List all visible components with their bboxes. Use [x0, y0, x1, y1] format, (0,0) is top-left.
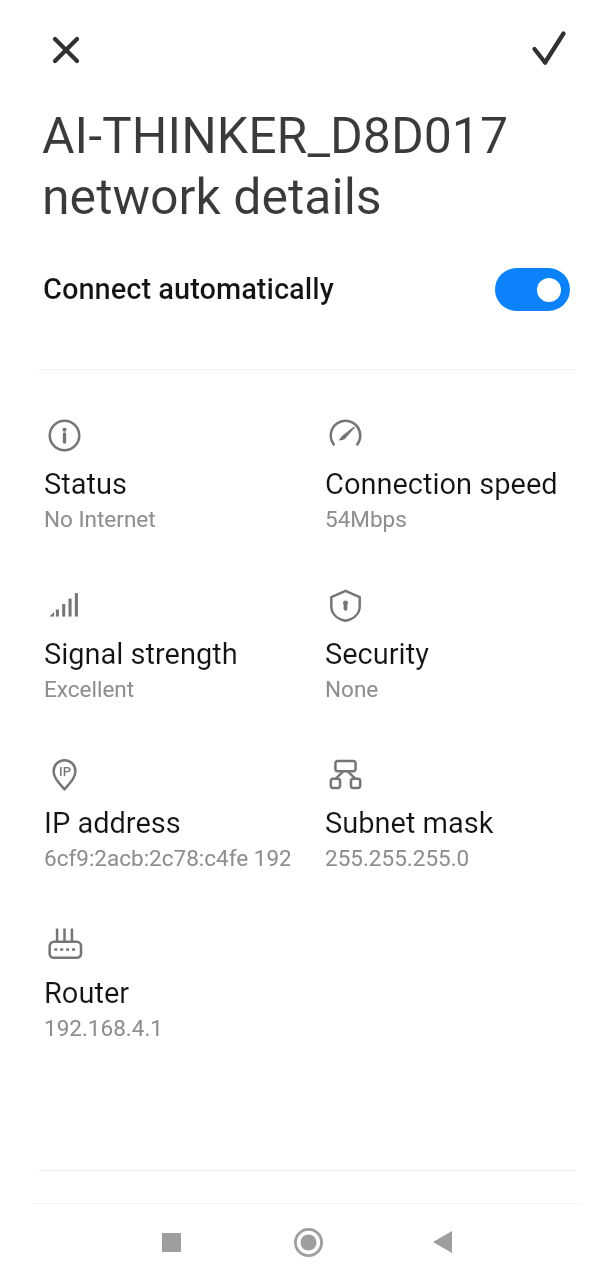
staticText: 54Mbps: [325, 506, 407, 532]
staticText: AI-THINKER_D8D017 network details: [42, 107, 508, 226]
staticText: None: [325, 676, 379, 702]
staticText: Signal strength: [44, 637, 238, 671]
staticText: IP: [59, 764, 71, 779]
button[interactable]: Connection speed: [325, 419, 587, 532]
staticText: Security: [325, 637, 429, 671]
staticText: 192.168.4.1: [44, 1015, 163, 1041]
staticText: Router: [44, 976, 130, 1010]
staticText: Excellent: [44, 676, 135, 702]
staticText: Status: [44, 467, 127, 501]
staticText: Subnet mask: [325, 806, 494, 840]
button[interactable]: Status: [44, 419, 290, 532]
staticText: No Internet: [44, 506, 156, 532]
button[interactable]: Router: [44, 928, 290, 1041]
button[interactable]: Close: [42, 26, 90, 74]
button[interactable]: Recents: [123, 1204, 219, 1280]
staticText: 255.255.255.0: [325, 845, 470, 871]
button[interactable]: IP: [44, 758, 290, 871]
staticText: IP address: [44, 806, 181, 840]
button[interactable]: Home: [260, 1204, 356, 1280]
button[interactable]: Connect automatically: [0, 253, 615, 325]
staticText: 6cf9:2acb:2c78:c4fe 192.168.4.2: [44, 845, 290, 871]
button[interactable]: Signal strength: [44, 589, 290, 702]
button[interactable]: Subnet mask: [325, 758, 587, 871]
button[interactable]: Security: [325, 589, 587, 702]
button[interactable]: Save: [525, 24, 573, 72]
button[interactable]: Back: [394, 1204, 490, 1280]
staticText: Connect automatically: [43, 272, 334, 306]
staticText: Connection speed: [325, 467, 558, 501]
